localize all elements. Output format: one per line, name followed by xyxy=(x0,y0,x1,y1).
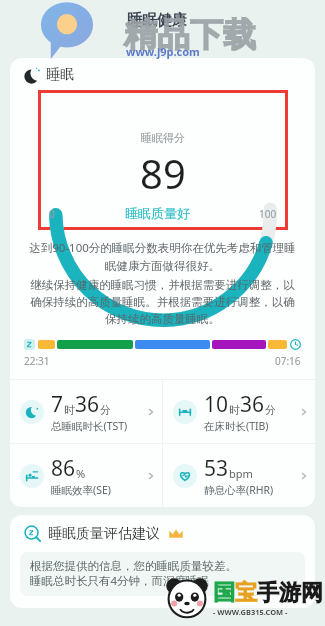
staticText: bpm xyxy=(229,466,253,481)
staticText: 静息心率(RHR) xyxy=(204,483,274,497)
staticText: 22:31 xyxy=(24,354,50,368)
staticText: 睡眠 xyxy=(46,66,74,84)
staticText: 睡眠健康 xyxy=(127,11,187,30)
staticText: 时 xyxy=(229,403,240,417)
staticText: 宝 xyxy=(235,579,257,607)
staticText: 睡眠效率(SE) xyxy=(51,483,111,497)
staticText: 53 xyxy=(204,454,229,483)
staticText: 国 xyxy=(213,579,235,607)
staticText: 分 xyxy=(265,403,276,417)
staticText: 达到90-100分的睡眠分数表明你在优先考虑和管理睡 眠健康方面做得很好。 xyxy=(22,240,303,273)
button[interactable]: 睡眠质量评估建议 xyxy=(24,525,184,543)
staticText: 精品下载 xyxy=(124,14,256,56)
staticText: 07:16 xyxy=(275,354,301,368)
staticText: 继续保持健康的睡眠习惯，并根据需要进行调整，以 确保持续的高质量睡眠。并根据需要… xyxy=(22,278,303,326)
staticText: 86 xyxy=(51,454,76,483)
staticText: % xyxy=(76,466,86,481)
staticText: 睡眠质量好 xyxy=(125,205,190,221)
staticText: 7 xyxy=(51,390,64,419)
button[interactable]: 53 xyxy=(163,444,315,507)
staticText: 100 xyxy=(259,207,277,221)
staticText: 0 xyxy=(49,207,55,221)
staticText: 在床时长(TIB) xyxy=(204,419,269,433)
staticText: 36 xyxy=(75,390,100,419)
button[interactable]: 睡眠 xyxy=(24,66,74,84)
staticText: 总睡眠时长(TST) xyxy=(51,419,128,433)
staticText: - WWW.GB315.COM - xyxy=(213,607,288,617)
button[interactable]: 86 xyxy=(10,444,162,507)
staticText: 89 xyxy=(140,146,186,200)
staticText: 手游网 xyxy=(257,579,323,607)
staticText: 睡眠得分 xyxy=(141,131,185,145)
staticText: 睡眠总时长只有4分钟，而深度睡眠 xyxy=(30,573,210,589)
button[interactable]: 7 xyxy=(10,380,162,443)
staticText: 36 xyxy=(240,390,265,419)
staticText: 根据您提供的信息，您的睡眠质量较差。 xyxy=(30,559,237,573)
staticText: 10 xyxy=(204,390,229,419)
staticText: www.j9p.com xyxy=(126,44,200,59)
staticText: 睡眠质量评估建议 xyxy=(48,525,160,543)
button[interactable]: 10 xyxy=(163,380,315,443)
staticText: 时 xyxy=(64,403,75,417)
staticText: 分 xyxy=(100,403,111,417)
